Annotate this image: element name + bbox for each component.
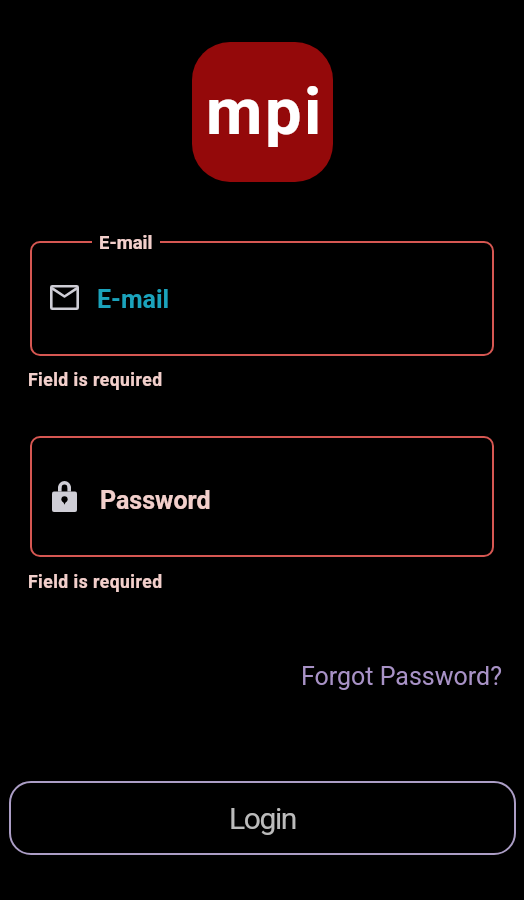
staticText: E-mail bbox=[99, 232, 153, 254]
button[interactable]: E-mail bbox=[30, 241, 494, 356]
staticText: E-mail bbox=[97, 285, 170, 314]
button[interactable]: Login bbox=[9, 781, 516, 855]
other: E-mail bbox=[50, 285, 79, 310]
staticText: mpi bbox=[206, 74, 324, 150]
staticText: Field is required bbox=[28, 572, 163, 593]
staticText: Password bbox=[100, 486, 211, 515]
other: Password bbox=[52, 480, 77, 512]
button[interactable]: Forgot Password? bbox=[301, 662, 502, 691]
staticText: Field is required bbox=[28, 370, 163, 391]
staticText: Login bbox=[229, 801, 296, 836]
button[interactable]: E-mail bbox=[99, 232, 153, 254]
staticText: Forgot Password? bbox=[301, 662, 502, 691]
button[interactable]: Password bbox=[30, 436, 494, 557]
